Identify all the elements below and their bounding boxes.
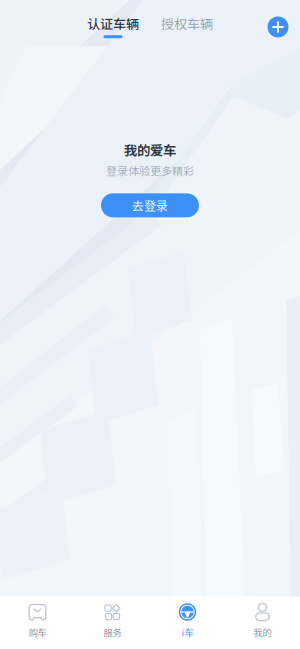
staticText: 我的	[253, 625, 271, 639]
button[interactable]: 我的	[225, 596, 300, 649]
staticText: 授权车辆	[161, 14, 213, 33]
button[interactable]: 购车	[0, 596, 75, 649]
staticText: 登录体验更多精彩	[106, 162, 194, 178]
button[interactable]: 服务	[75, 596, 150, 649]
staticText: 去登录	[132, 197, 168, 214]
button[interactable]: Add vehicle	[267, 16, 289, 38]
button[interactable]: 授权车辆	[150, 0, 224, 46]
staticText: 购车	[28, 625, 46, 639]
staticText: 认证车辆	[87, 14, 139, 33]
button[interactable]: 认证车辆	[76, 0, 150, 46]
staticText: 服务	[103, 625, 121, 639]
button[interactable]: 去登录	[101, 193, 199, 217]
staticText: i车	[181, 625, 193, 639]
button[interactable]: i车	[150, 596, 225, 649]
staticText: 我的爱车	[124, 140, 176, 159]
